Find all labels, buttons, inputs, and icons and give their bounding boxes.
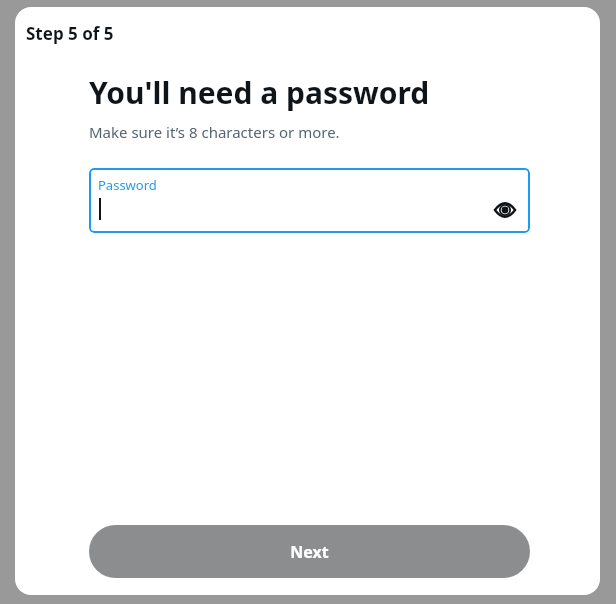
- button[interactable]: Show password: [491, 196, 519, 224]
- staticText: Make sure it’s 8 characters or more.: [89, 122, 340, 142]
- staticText: Step 5 of 5: [26, 22, 114, 45]
- staticText: Password: [98, 176, 157, 194]
- staticText: You'll need a password: [89, 72, 430, 113]
- staticText: Next: [290, 541, 329, 563]
- button[interactable]: Next: [89, 525, 530, 578]
- button[interactable]: Password: [89, 168, 530, 233]
